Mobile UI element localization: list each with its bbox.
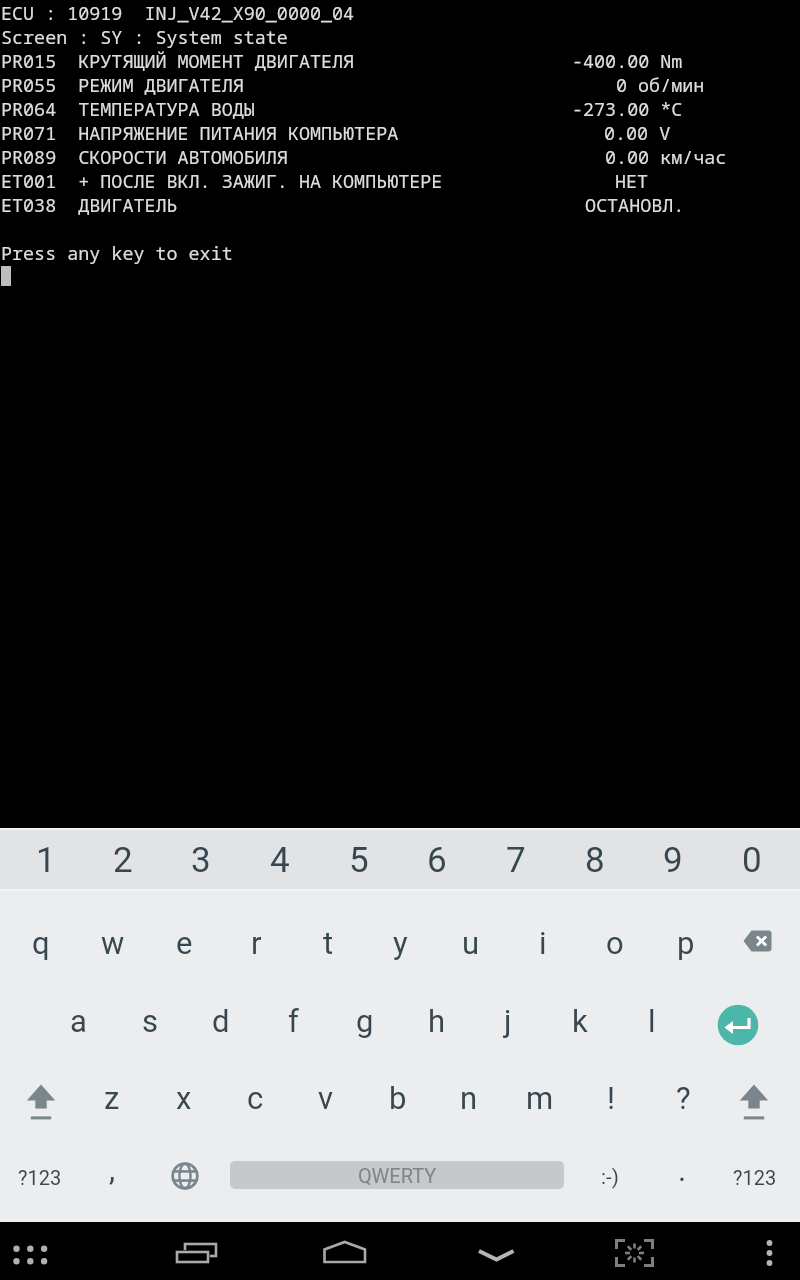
staticText: , xyxy=(109,1151,116,1187)
button[interactable]: y xyxy=(365,905,435,981)
staticText: h xyxy=(428,1003,446,1039)
button[interactable]: j xyxy=(473,983,543,1059)
button[interactable]: 4 xyxy=(242,831,318,889)
staticText: ОСТАНОВЛ. xyxy=(585,192,685,217)
staticText: s xyxy=(142,1003,158,1039)
button[interactable]: m xyxy=(505,1060,575,1136)
button[interactable]: p xyxy=(651,905,721,981)
button[interactable]: r xyxy=(221,905,291,981)
button[interactable]: s xyxy=(115,983,185,1059)
staticText: ET001 + ПОСЛЕ ВКЛ. ЗАЖИГ. НА КОМПЬЮТЕРЕ xyxy=(1,168,443,193)
staticText: t xyxy=(323,925,334,961)
button[interactable]: 9 xyxy=(635,831,711,889)
button[interactable]: d xyxy=(186,983,256,1059)
button[interactable]: :-) xyxy=(575,1142,645,1212)
button[interactable]: 1 xyxy=(8,831,84,889)
button[interactable]: i xyxy=(508,905,578,981)
button[interactable]: c xyxy=(220,1060,290,1136)
button[interactable] xyxy=(721,1065,787,1135)
staticText: 4 xyxy=(270,840,290,881)
button[interactable]: b xyxy=(363,1060,433,1136)
staticText: j xyxy=(504,1003,512,1039)
staticText: 0.00 V xyxy=(604,120,671,145)
button[interactable]: q xyxy=(6,905,76,981)
staticText: 2 xyxy=(113,840,133,881)
staticText: r xyxy=(251,925,262,961)
staticText: u xyxy=(462,925,480,961)
button[interactable]: u xyxy=(436,905,506,981)
button[interactable]: ? xyxy=(648,1060,718,1136)
staticText: ? xyxy=(676,1080,691,1116)
staticText: QWERTY xyxy=(358,1164,437,1187)
staticText: ! xyxy=(607,1080,615,1116)
button[interactable]: 5 xyxy=(321,831,397,889)
staticText: z xyxy=(104,1080,120,1116)
staticText: 8 xyxy=(585,840,605,881)
staticText: q xyxy=(32,925,50,961)
button[interactable] xyxy=(0,1222,63,1280)
button[interactable] xyxy=(463,1222,529,1280)
button[interactable]: 2 xyxy=(85,831,161,889)
button[interactable]: v xyxy=(291,1060,361,1136)
staticText: ?123 xyxy=(733,1166,777,1189)
button[interactable]: o xyxy=(580,905,650,981)
button[interactable]: h xyxy=(402,983,472,1059)
button[interactable] xyxy=(601,1222,667,1280)
staticText: . xyxy=(678,1152,687,1188)
staticText: -400.00 Nm xyxy=(572,48,683,73)
button[interactable] xyxy=(723,903,793,979)
staticText: m xyxy=(526,1080,554,1116)
button[interactable]: . xyxy=(647,1135,717,1205)
button[interactable]: 8 xyxy=(557,831,633,889)
staticText: p xyxy=(677,925,695,961)
button[interactable]: k xyxy=(545,983,615,1059)
button[interactable]: 0 xyxy=(714,831,790,889)
button[interactable]: f xyxy=(258,983,328,1059)
staticText: Screen : SY : System state xyxy=(1,24,288,49)
button[interactable]: z xyxy=(77,1060,147,1136)
staticText: ECU : 10919 INJ_V42_X90_0000_04 xyxy=(1,0,355,25)
button[interactable]: g xyxy=(330,983,400,1059)
button[interactable]: , xyxy=(77,1134,147,1204)
button[interactable] xyxy=(150,1141,220,1211)
staticText: i xyxy=(539,925,547,961)
button[interactable]: x xyxy=(149,1060,219,1136)
button[interactable]: a xyxy=(43,983,113,1059)
staticText: y xyxy=(393,925,408,961)
staticText: v xyxy=(318,1080,334,1116)
button[interactable]: e xyxy=(149,905,219,981)
staticText: k xyxy=(572,1003,588,1039)
button[interactable] xyxy=(159,1222,225,1280)
button[interactable] xyxy=(8,1065,74,1135)
staticText: l xyxy=(648,1003,656,1039)
button[interactable] xyxy=(311,1222,377,1280)
button[interactable]: ?123 xyxy=(720,1142,790,1212)
button[interactable]: ! xyxy=(576,1060,646,1136)
staticText: f xyxy=(288,1003,299,1039)
button[interactable]: n xyxy=(434,1060,504,1136)
button[interactable]: 6 xyxy=(399,831,475,889)
staticText: 0 об/мин xyxy=(616,72,705,97)
button[interactable]: ?123 xyxy=(5,1142,75,1212)
staticText: :-) xyxy=(601,1165,619,1189)
staticText: e xyxy=(176,925,193,961)
staticText: 0.00 км/час xyxy=(605,144,727,169)
button[interactable]: QWERTY xyxy=(230,1161,564,1189)
staticText: PR064 ТЕМПЕРАТУРА ВОДЫ xyxy=(1,96,255,121)
staticText: PR015 КРУТЯЩИЙ МОМЕНТ ДВИГАТЕЛЯ xyxy=(1,48,355,73)
button[interactable]: l xyxy=(617,983,687,1059)
button[interactable]: w xyxy=(78,905,148,981)
staticText: 6 xyxy=(427,840,447,881)
staticText: 0 xyxy=(742,840,762,881)
staticText: d xyxy=(212,1003,230,1039)
staticText: x xyxy=(176,1080,192,1116)
button[interactable]: 7 xyxy=(478,831,554,889)
button[interactable]: 3 xyxy=(163,831,239,889)
button[interactable]: t xyxy=(293,905,363,981)
staticText: -273.00 *C xyxy=(572,96,683,121)
staticText: o xyxy=(606,925,624,961)
staticText: w xyxy=(101,925,125,961)
button[interactable] xyxy=(734,1222,800,1280)
staticText: PR071 НАПРЯЖЕНИЕ ПИТАНИЯ КОМПЬЮТЕРА xyxy=(1,120,399,145)
button[interactable] xyxy=(699,986,777,1064)
